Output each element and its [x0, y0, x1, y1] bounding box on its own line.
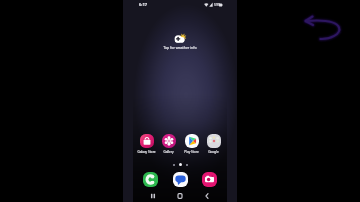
button[interactable]: Play Store — [181, 134, 202, 154]
button[interactable]: Galaxy Store — [136, 134, 157, 154]
staticText: Tap for weather info — [163, 45, 197, 50]
button[interactable]: Google — [203, 134, 224, 154]
button[interactable]: Back — [202, 191, 212, 201]
button[interactable]: Gallery — [158, 134, 179, 154]
staticText: Gallery — [163, 150, 174, 154]
staticText: Galaxy Store — [137, 150, 156, 154]
staticText: Play Store — [184, 150, 199, 154]
staticText: 59% — [214, 2, 221, 6]
staticText: Google — [208, 150, 219, 154]
button[interactable]: Messages — [173, 172, 188, 187]
button[interactable]: Tap for weather info — [163, 34, 197, 50]
staticText: 6:17 — [139, 2, 147, 7]
button[interactable]: Home — [175, 191, 185, 201]
button[interactable]: Recents — [148, 191, 158, 201]
button[interactable]: Phone — [143, 172, 158, 187]
button[interactable]: Camera — [202, 172, 217, 187]
